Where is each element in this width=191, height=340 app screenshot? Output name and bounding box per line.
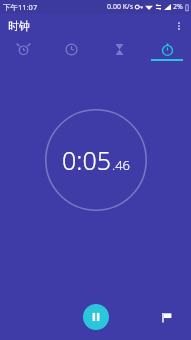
button[interactable]: Pause [83, 304, 109, 330]
button[interactable]: Clock [47, 38, 95, 64]
staticText: 0.00 K/s [107, 2, 133, 12]
staticText: 2% [173, 2, 183, 12]
staticText: 时钟 [8, 19, 30, 33]
staticText: .46 [112, 156, 131, 174]
staticText: 0:05 [62, 143, 111, 177]
button[interactable]: Alarm [0, 38, 47, 64]
button[interactable]: More options [167, 14, 191, 38]
staticText: 下午11:07 [3, 2, 38, 12]
button[interactable]: Timer [95, 38, 143, 64]
button[interactable]: Lap [155, 306, 177, 328]
button[interactable]: Stopwatch [143, 38, 191, 64]
